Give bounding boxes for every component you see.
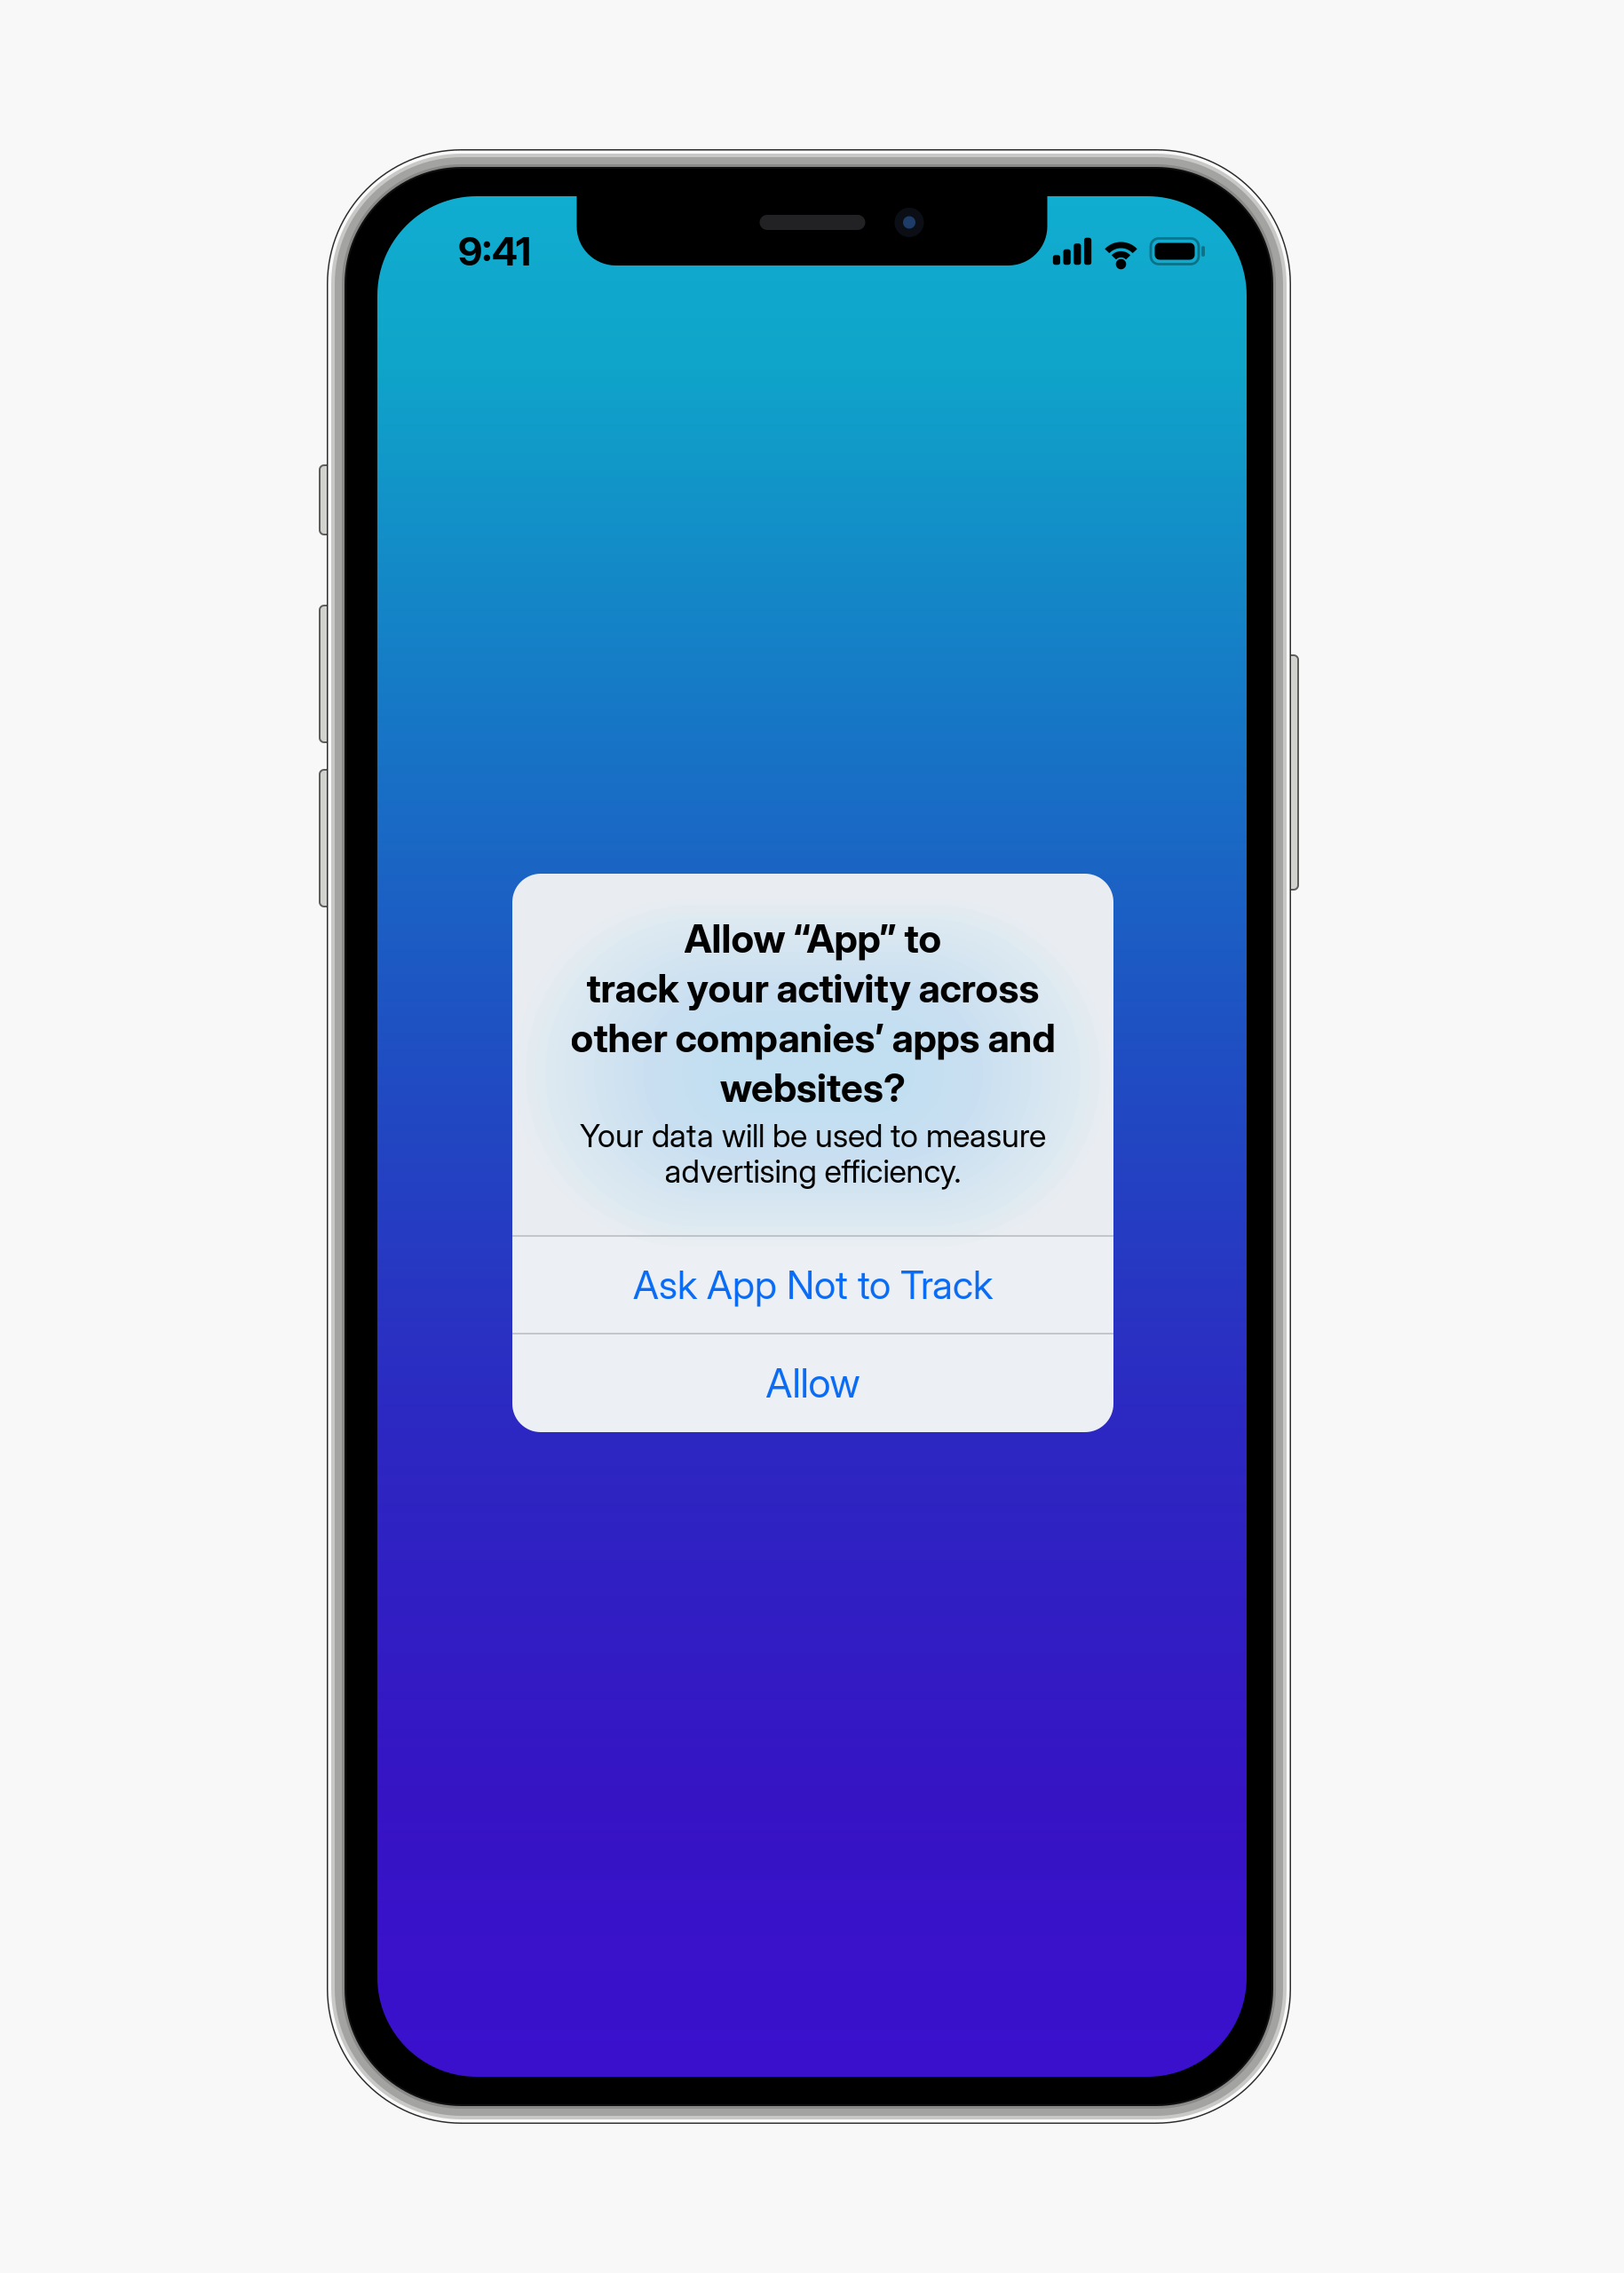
staticText: Ask App Not to Track [633,1261,993,1308]
staticText: advertising efficiency. [665,1152,961,1190]
staticText: Allow “App” to [684,915,942,962]
staticText: other companies’ apps and [570,1014,1055,1062]
button[interactable]: Allow [512,1334,1113,1431]
staticText: websites? [720,1064,906,1111]
staticText: Allow [766,1359,860,1407]
button[interactable]: Ask App Not to Track [512,1237,1113,1333]
staticText: track your activity across [586,965,1039,1012]
staticText: 9:41 [458,228,531,275]
staticText: Your data will be used to measure [580,1116,1046,1155]
